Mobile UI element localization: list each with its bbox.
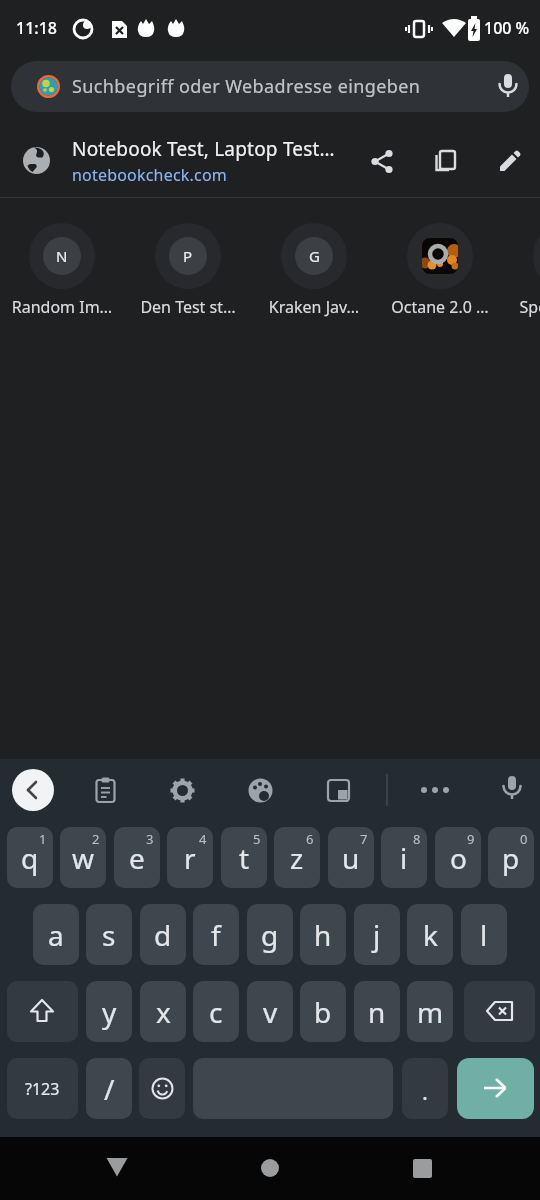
staticText: 4	[199, 830, 207, 848]
button[interactable]: q	[7, 827, 53, 888]
button[interactable]: t	[221, 827, 267, 888]
staticText: Den Test st…	[133, 296, 243, 318]
button[interactable]: i	[381, 827, 427, 888]
button[interactable]	[170, 778, 195, 803]
staticText: 7	[360, 830, 368, 848]
button[interactable]: Suchbegriff oder Webadresse eingeben	[11, 61, 529, 112]
staticText: r	[184, 839, 196, 877]
button[interactable]	[326, 778, 351, 803]
staticText: ?123	[25, 1078, 60, 1100]
button[interactable]: u	[328, 827, 374, 888]
staticText: P	[183, 246, 193, 266]
staticText: 100 %	[484, 17, 530, 39]
button[interactable]: l	[461, 904, 507, 965]
button[interactable]: ?123	[7, 1058, 78, 1119]
staticText: N	[56, 246, 68, 266]
button[interactable]	[106, 1157, 128, 1177]
staticText: 0	[520, 830, 528, 848]
staticText: p	[502, 839, 520, 877]
button[interactable]	[7, 981, 78, 1042]
staticText: Suchbegriff oder Webadresse eingeben	[72, 74, 421, 99]
staticText: t	[239, 839, 250, 877]
staticText: a	[48, 916, 64, 954]
staticText: f	[211, 916, 221, 954]
staticText: 5	[253, 830, 261, 848]
staticText: u	[342, 839, 360, 877]
button[interactable]: P	[133, 216, 243, 318]
staticText: b	[314, 993, 332, 1031]
button[interactable]: a	[33, 904, 79, 965]
staticText: 3	[146, 830, 154, 848]
button[interactable]: N	[7, 216, 117, 318]
button[interactable]: r	[167, 827, 213, 888]
button[interactable]: n	[354, 981, 400, 1042]
button[interactable]	[370, 149, 395, 174]
staticText: Random Im…	[7, 296, 117, 318]
button[interactable]: j	[354, 904, 400, 965]
staticText: 2	[92, 830, 100, 848]
staticText: v	[263, 993, 278, 1031]
button[interactable]: z	[274, 827, 320, 888]
staticText: h	[314, 916, 332, 954]
button[interactable]: /	[86, 1058, 132, 1119]
staticText: 11:18	[16, 17, 57, 39]
staticText: l	[480, 916, 488, 954]
staticText: w	[72, 839, 95, 877]
button[interactable]: x	[140, 981, 186, 1042]
button[interactable]: Notebook Test, Laptop Test…	[0, 125, 540, 197]
button[interactable]: f	[193, 904, 239, 965]
staticText: j	[373, 916, 381, 954]
button[interactable]: G	[259, 216, 369, 318]
staticText: e	[129, 839, 145, 877]
staticText: g	[261, 916, 279, 954]
button[interactable]	[413, 1159, 432, 1178]
staticText: n	[368, 993, 386, 1031]
button[interactable]	[500, 776, 524, 804]
staticText: o	[450, 839, 467, 877]
button[interactable]	[464, 981, 535, 1042]
button[interactable]: g	[247, 904, 293, 965]
button[interactable]: v	[247, 981, 293, 1042]
staticText: Octane 2.0 …	[385, 296, 495, 318]
button[interactable]	[433, 149, 458, 174]
button[interactable]	[497, 149, 522, 174]
button[interactable]: b	[300, 981, 346, 1042]
button[interactable]	[457, 1058, 534, 1119]
staticText: 1	[39, 830, 47, 848]
button[interactable]	[139, 1058, 185, 1119]
button[interactable]: .	[402, 1058, 448, 1119]
button[interactable]: o	[435, 827, 481, 888]
button[interactable]	[420, 784, 450, 796]
button[interactable]: d	[140, 904, 186, 965]
button[interactable]: m	[407, 981, 453, 1042]
button[interactable]: s	[86, 904, 132, 965]
button[interactable]: c	[193, 981, 239, 1042]
button[interactable]	[12, 769, 54, 811]
staticText: s	[102, 916, 116, 954]
staticText: notebookcheck.com	[72, 164, 227, 186]
button[interactable]: w	[60, 827, 106, 888]
button[interactable]: S	[511, 216, 540, 318]
button[interactable]: k	[407, 904, 453, 965]
staticText: 8	[413, 830, 421, 848]
staticText: q	[21, 839, 39, 877]
button[interactable]	[94, 777, 117, 804]
button[interactable]: Octane 2.0 …	[385, 216, 495, 318]
button[interactable]: y	[86, 981, 132, 1042]
staticText: i	[400, 839, 408, 877]
button[interactable]: p	[488, 827, 534, 888]
staticText: Kraken Jav…	[259, 296, 369, 318]
staticText: y	[102, 993, 117, 1031]
button[interactable]	[261, 1159, 279, 1177]
staticText: 9	[467, 830, 475, 848]
button[interactable]: h	[300, 904, 346, 965]
staticText: .	[422, 1076, 428, 1106]
button[interactable]: e	[114, 827, 160, 888]
staticText: G	[309, 246, 320, 266]
staticText: d	[154, 916, 172, 954]
staticText: 6	[306, 830, 314, 848]
staticText: x	[156, 993, 171, 1031]
staticText: c	[209, 993, 223, 1031]
button[interactable]	[248, 778, 273, 803]
